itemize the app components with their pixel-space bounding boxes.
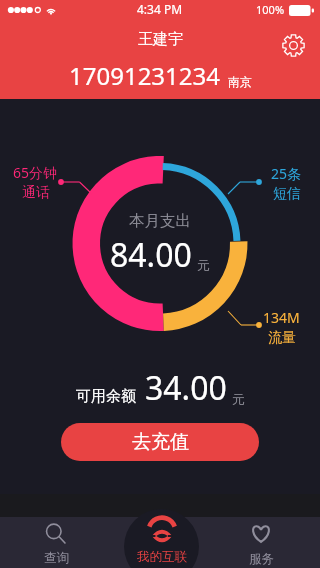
staticText: 查询 (44, 550, 69, 566)
staticText: 134M (263, 308, 300, 327)
staticText: 元 (232, 391, 245, 407)
staticText: 100% (256, 2, 285, 17)
staticText: 王建宇 (138, 30, 183, 49)
staticText: 4:34 PM (137, 1, 183, 17)
staticText: 65分钟 (13, 163, 58, 182)
staticText: 25条 (271, 164, 302, 183)
staticText: 17091231234 (69, 59, 221, 92)
staticText: 南京 (228, 74, 252, 89)
staticText: 短信 (273, 185, 301, 203)
button[interactable]: Settings (278, 30, 308, 60)
staticText: 84.00 (110, 233, 192, 277)
staticText: 可用余额 (76, 387, 136, 406)
staticText: 通话 (22, 184, 50, 202)
staticText: 本月支出 (129, 211, 191, 231)
staticText: 元 (197, 257, 210, 273)
button[interactable]: 服务 (238, 523, 284, 567)
staticText: 服务 (249, 551, 274, 567)
staticText: 我的互联 (137, 549, 187, 565)
staticText: 流量 (268, 329, 296, 347)
button[interactable]: 去充值 (61, 423, 259, 461)
button[interactable]: 我的互联 (124, 509, 199, 568)
staticText: 34.00 (145, 366, 227, 410)
staticText: 去充值 (132, 430, 189, 454)
button[interactable]: 查询 (33, 523, 79, 566)
